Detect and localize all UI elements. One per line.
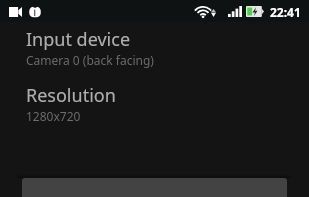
staticText: Input device [26, 27, 131, 52]
other: Wi-Fi [196, 6, 210, 18]
button[interactable]: Input device [0, 22, 309, 68]
other: Debug [29, 6, 41, 18]
other: Screen recording [9, 7, 22, 17]
other: Mobile signal [228, 6, 242, 17]
other: Battery charging [246, 6, 264, 17]
staticText: 22:41 [270, 4, 301, 20]
button[interactable]: Resolution [0, 68, 309, 124]
staticText: 1280x720 [26, 108, 81, 124]
staticText: Resolution [26, 83, 116, 108]
staticText: Camera 0 (back facing) [26, 52, 154, 68]
